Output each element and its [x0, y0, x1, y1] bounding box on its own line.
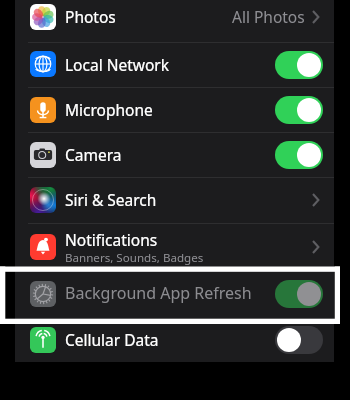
staticText: Notifications	[65, 229, 158, 250]
staticText: Cellular Data	[65, 329, 159, 350]
button[interactable]	[15, 321, 334, 362]
button[interactable]	[15, 272, 334, 320]
staticText: Banners, Sounds, Badges	[65, 250, 204, 266]
staticText: Background App Refresh	[65, 282, 252, 304]
button[interactable]: On	[275, 141, 323, 169]
button[interactable]	[15, 178, 334, 223]
button[interactable]	[15, 133, 334, 177]
button[interactable]	[15, 224, 334, 266]
staticText: Microphone	[65, 99, 153, 120]
button[interactable]	[15, 0, 334, 46]
button[interactable]	[15, 88, 334, 132]
button[interactable]: On	[275, 51, 323, 79]
staticText: Siri & Search	[65, 189, 157, 210]
staticText: Photos	[65, 6, 116, 27]
staticText: Local Network	[65, 54, 170, 75]
button[interactable]: On	[275, 280, 323, 308]
button[interactable]: Off	[275, 326, 323, 354]
staticText: Camera	[65, 144, 122, 165]
button[interactable]	[15, 43, 334, 87]
staticText: All Photos	[232, 6, 305, 27]
button[interactable]: On	[275, 96, 323, 124]
